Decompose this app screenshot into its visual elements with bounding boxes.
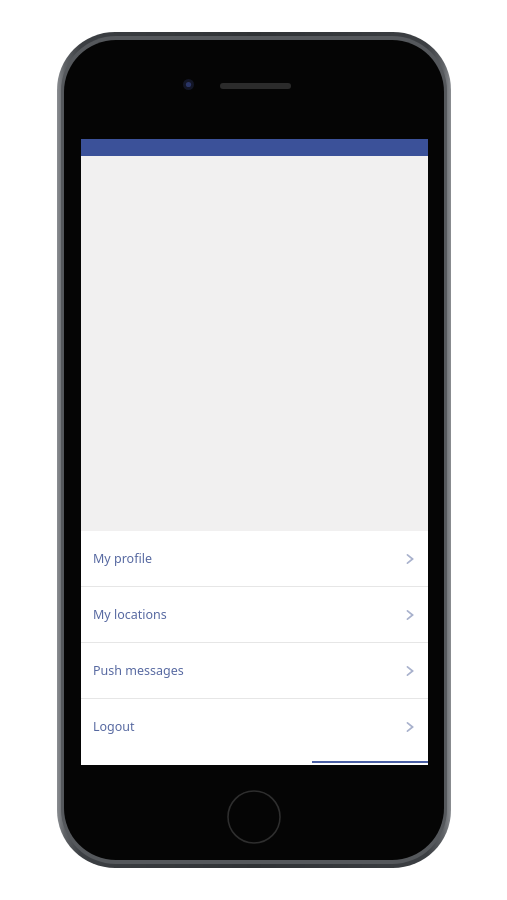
button[interactable]: Logout [81, 699, 428, 754]
other: Home [227, 790, 281, 844]
staticText: My locations [93, 606, 167, 623]
staticText: Push messages [93, 662, 184, 679]
button[interactable]: Push messages [81, 643, 428, 698]
staticText: My profile [93, 550, 152, 567]
button[interactable]: My locations [81, 587, 428, 642]
button[interactable]: My profile [81, 531, 428, 586]
staticText: Logout [93, 718, 135, 735]
